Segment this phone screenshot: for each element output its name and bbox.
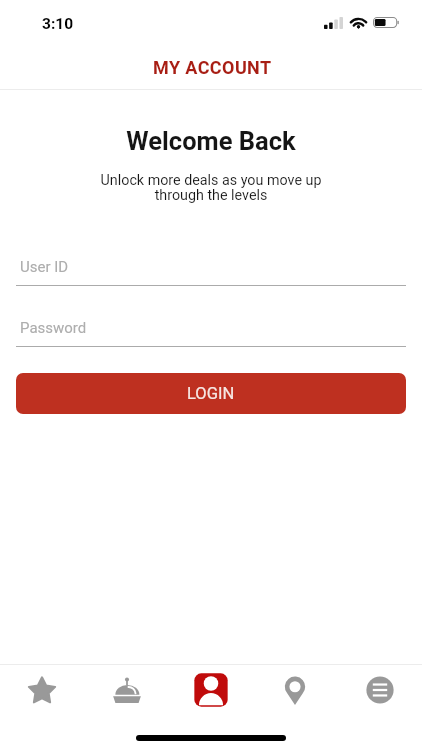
staticText: Welcome Back	[0, 126, 422, 156]
button[interactable]: Menu	[85, 665, 169, 714]
staticText: Password	[20, 319, 87, 337]
staticText: User ID	[20, 258, 69, 276]
button[interactable]: More	[338, 665, 422, 714]
button[interactable]: My Account	[169, 665, 253, 714]
staticText: 3:10	[42, 15, 74, 33]
staticText: LOGIN	[187, 384, 235, 403]
button[interactable]: Locations	[253, 665, 337, 714]
staticText: MY ACCOUNT	[153, 57, 272, 78]
button[interactable]: LOGIN	[16, 373, 406, 414]
button[interactable]: Favourites	[0, 665, 84, 714]
staticText: Unlock more deals as you move up through…	[0, 172, 422, 203]
